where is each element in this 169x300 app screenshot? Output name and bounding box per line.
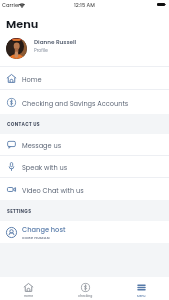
button[interactable]: Checking — [57, 277, 113, 300]
staticText: CONTACT US — [7, 121, 40, 127]
button[interactable]: Video Chat with us — [0, 178, 169, 200]
staticText: CORE HUMAN — [22, 235, 50, 240]
button[interactable]: Message us — [0, 134, 169, 155]
staticText: Menu — [137, 294, 146, 298]
staticText: SETTINGS — [7, 208, 32, 214]
staticText: Dianne Russell — [34, 38, 77, 46]
staticText: Home — [24, 294, 33, 298]
staticText: Speak with us — [22, 163, 68, 172]
button[interactable]: Speak with us — [0, 156, 169, 177]
staticText: Menu — [6, 16, 39, 32]
staticText: Home — [22, 75, 42, 84]
button[interactable]: Checking and Savings Accounts — [0, 90, 169, 114]
button[interactable]: Home — [0, 67, 169, 89]
button[interactable]: Change host — [0, 221, 169, 243]
staticText: Carrier — [2, 2, 21, 9]
button[interactable]: Dianne Russell — [0, 34, 169, 66]
staticText: Video Chat with us — [22, 186, 84, 195]
button[interactable]: Menu — [113, 277, 169, 300]
staticText: 12:15 AM — [74, 2, 95, 9]
staticText: Profile — [34, 47, 48, 53]
button[interactable]: Home — [0, 277, 57, 300]
staticText: Message us — [22, 141, 62, 150]
staticText: Checking and Savings Accounts — [22, 99, 129, 108]
staticText: Checking — [78, 294, 93, 298]
staticText: Change host — [22, 225, 66, 234]
